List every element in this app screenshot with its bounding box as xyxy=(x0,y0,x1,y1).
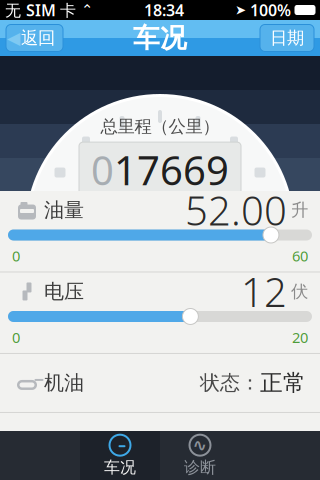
staticText: 伏 xyxy=(291,281,308,302)
staticText: ◀ xyxy=(7,28,20,48)
staticText: 诊断 xyxy=(184,458,216,477)
button[interactable]: 日期 xyxy=(260,24,320,51)
staticText: 0 xyxy=(12,327,20,347)
staticText: 油量 xyxy=(44,198,84,222)
staticText: ⌃ xyxy=(76,2,93,18)
staticText: 车况 xyxy=(104,458,136,477)
staticText: 状态： xyxy=(200,371,260,395)
staticText: 机油 xyxy=(44,371,84,395)
staticText: 无 SIM 卡 xyxy=(5,0,76,21)
staticText: 0 xyxy=(91,143,114,196)
staticText: 20 xyxy=(292,327,308,347)
staticText: 正常 xyxy=(260,369,306,397)
button[interactable]: ∿ xyxy=(160,431,240,480)
staticText: 0 xyxy=(12,246,20,265)
button[interactable]: 车况 xyxy=(80,431,160,480)
staticText: 17669 xyxy=(114,143,229,196)
staticText: 总里程（公里） xyxy=(100,116,219,137)
staticText: 升 xyxy=(291,199,308,221)
staticText: 52.00 xyxy=(185,183,287,236)
staticText: 60 xyxy=(292,246,308,265)
staticText: 车况 xyxy=(133,22,187,54)
staticText: 日期 xyxy=(270,27,304,49)
staticText: 100% xyxy=(246,0,291,21)
staticText: 返回 xyxy=(21,27,55,49)
staticText: 电压 xyxy=(44,279,84,304)
staticText: ➤ xyxy=(235,2,246,17)
staticText: 18:34 xyxy=(144,0,184,21)
staticText: ∿ xyxy=(192,435,207,455)
button[interactable]: ◀ xyxy=(0,24,63,51)
staticText: 12 xyxy=(241,265,287,318)
